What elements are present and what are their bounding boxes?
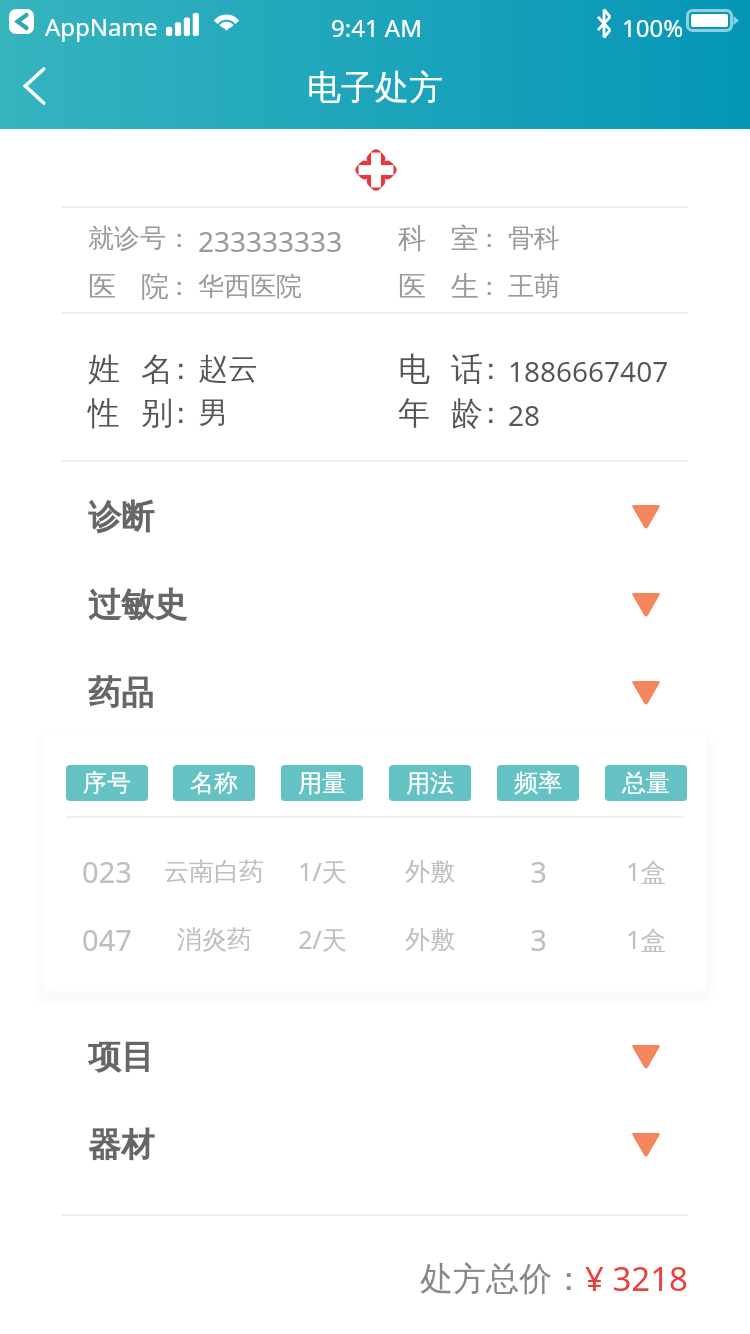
staticText: 男 bbox=[198, 394, 228, 432]
button[interactable]: 项目 bbox=[0, 1027, 750, 1087]
staticText: 药品 bbox=[88, 672, 154, 714]
staticText: ： bbox=[166, 222, 192, 255]
staticText: ¥ 3218 bbox=[585, 1256, 688, 1301]
staticText: AppName bbox=[45, 10, 158, 43]
staticText: 电 bbox=[398, 349, 430, 389]
staticText: 医 bbox=[88, 269, 116, 304]
button[interactable]: Back to AppName bbox=[9, 9, 34, 34]
staticText: 华西医院 bbox=[198, 270, 302, 303]
button[interactable]: 名称 bbox=[173, 765, 255, 801]
staticText: 1/天 bbox=[298, 854, 347, 888]
button[interactable]: 器材 bbox=[0, 1115, 750, 1175]
button[interactable]: 过敏史 bbox=[0, 575, 750, 635]
staticText: 2/天 bbox=[298, 922, 347, 956]
staticText: 室 bbox=[451, 221, 479, 256]
staticText: ： bbox=[166, 394, 196, 432]
staticText: 总量 bbox=[622, 768, 670, 798]
staticText: 9:41 AM bbox=[331, 11, 422, 44]
staticText: 3 bbox=[530, 920, 547, 956]
staticText: 1盒 bbox=[626, 922, 666, 956]
staticText: 1886667407 bbox=[508, 352, 669, 390]
button[interactable]: 诊断 bbox=[0, 487, 750, 547]
staticText: 用法 bbox=[406, 768, 454, 798]
staticText: ： bbox=[166, 350, 196, 388]
button[interactable]: 总量 bbox=[605, 765, 687, 801]
staticText: 023 bbox=[82, 852, 132, 888]
button[interactable]: Back bbox=[11, 62, 61, 110]
staticText: 姓 bbox=[88, 349, 120, 389]
staticText: 生 bbox=[451, 269, 479, 304]
staticText: 就诊号 bbox=[88, 222, 166, 255]
staticText: 外敷 bbox=[405, 856, 455, 887]
staticText: 性 bbox=[88, 393, 120, 433]
staticText: 别 bbox=[141, 393, 173, 433]
staticText: ： bbox=[476, 394, 506, 432]
staticText: 骨科 bbox=[508, 222, 560, 255]
staticText: 用量 bbox=[298, 768, 346, 798]
staticText: 外敷 bbox=[405, 924, 455, 955]
staticText: 科 bbox=[398, 221, 426, 256]
staticText: 消炎药 bbox=[177, 924, 252, 955]
staticText: ： bbox=[476, 270, 502, 303]
staticText: 院 bbox=[141, 269, 169, 304]
staticText: 器材 bbox=[88, 1124, 154, 1166]
button[interactable]: 频率 bbox=[497, 765, 579, 801]
staticText: 序号 bbox=[83, 768, 131, 798]
staticText: 28 bbox=[508, 396, 541, 434]
button[interactable]: 药品 bbox=[0, 663, 750, 723]
staticText: 047 bbox=[82, 920, 132, 956]
staticText: 医 bbox=[398, 269, 426, 304]
staticText: ： bbox=[476, 350, 506, 388]
button[interactable]: 序号 bbox=[66, 765, 148, 801]
staticText: 云南白药 bbox=[164, 856, 264, 887]
staticText: 3 bbox=[530, 852, 547, 888]
staticText: 过敏史 bbox=[88, 584, 187, 626]
staticText: 话 bbox=[451, 349, 483, 389]
staticText: 名称 bbox=[190, 768, 238, 798]
staticText: 电子处方 bbox=[307, 66, 443, 109]
staticText: 1盒 bbox=[626, 854, 666, 888]
button[interactable]: 用量 bbox=[281, 765, 363, 801]
button[interactable]: 用法 bbox=[389, 765, 471, 801]
staticText: 名 bbox=[141, 349, 173, 389]
staticText: 龄 bbox=[451, 393, 483, 433]
staticText: 处方总价： bbox=[420, 1258, 585, 1300]
staticText: 频率 bbox=[514, 768, 562, 798]
staticText: 赵云 bbox=[198, 350, 258, 388]
staticText: 年 bbox=[398, 393, 430, 433]
staticText: 233333333 bbox=[198, 222, 343, 260]
staticText: 项目 bbox=[88, 1036, 154, 1078]
staticText: 诊断 bbox=[88, 496, 154, 538]
staticText: 王萌 bbox=[508, 270, 560, 303]
staticText: 100% bbox=[622, 11, 684, 44]
staticText: ： bbox=[166, 270, 192, 303]
staticText: ： bbox=[476, 222, 502, 255]
